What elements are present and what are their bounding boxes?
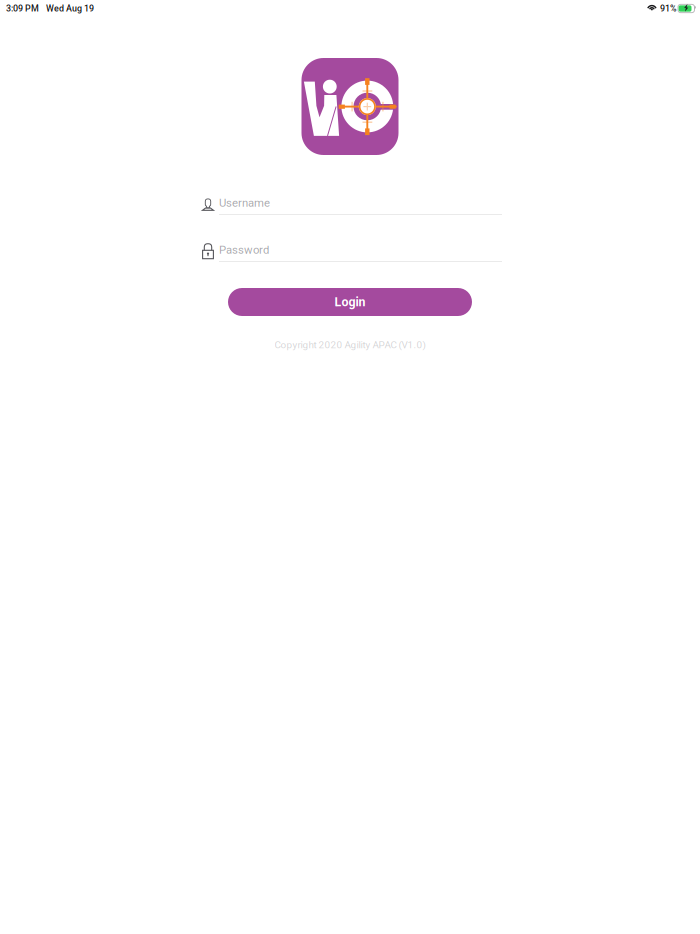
staticText: Password (219, 243, 269, 257)
staticText: Wed Aug 19 (46, 3, 94, 14)
staticText: 91% (660, 3, 677, 14)
staticText: 3:09 PM (6, 3, 39, 14)
staticText: Copyright 2020 Agility APAC (V1.0) (274, 339, 425, 351)
staticText: Login (334, 295, 365, 309)
button[interactable]: Login (228, 288, 472, 316)
staticText: Username (219, 196, 270, 210)
